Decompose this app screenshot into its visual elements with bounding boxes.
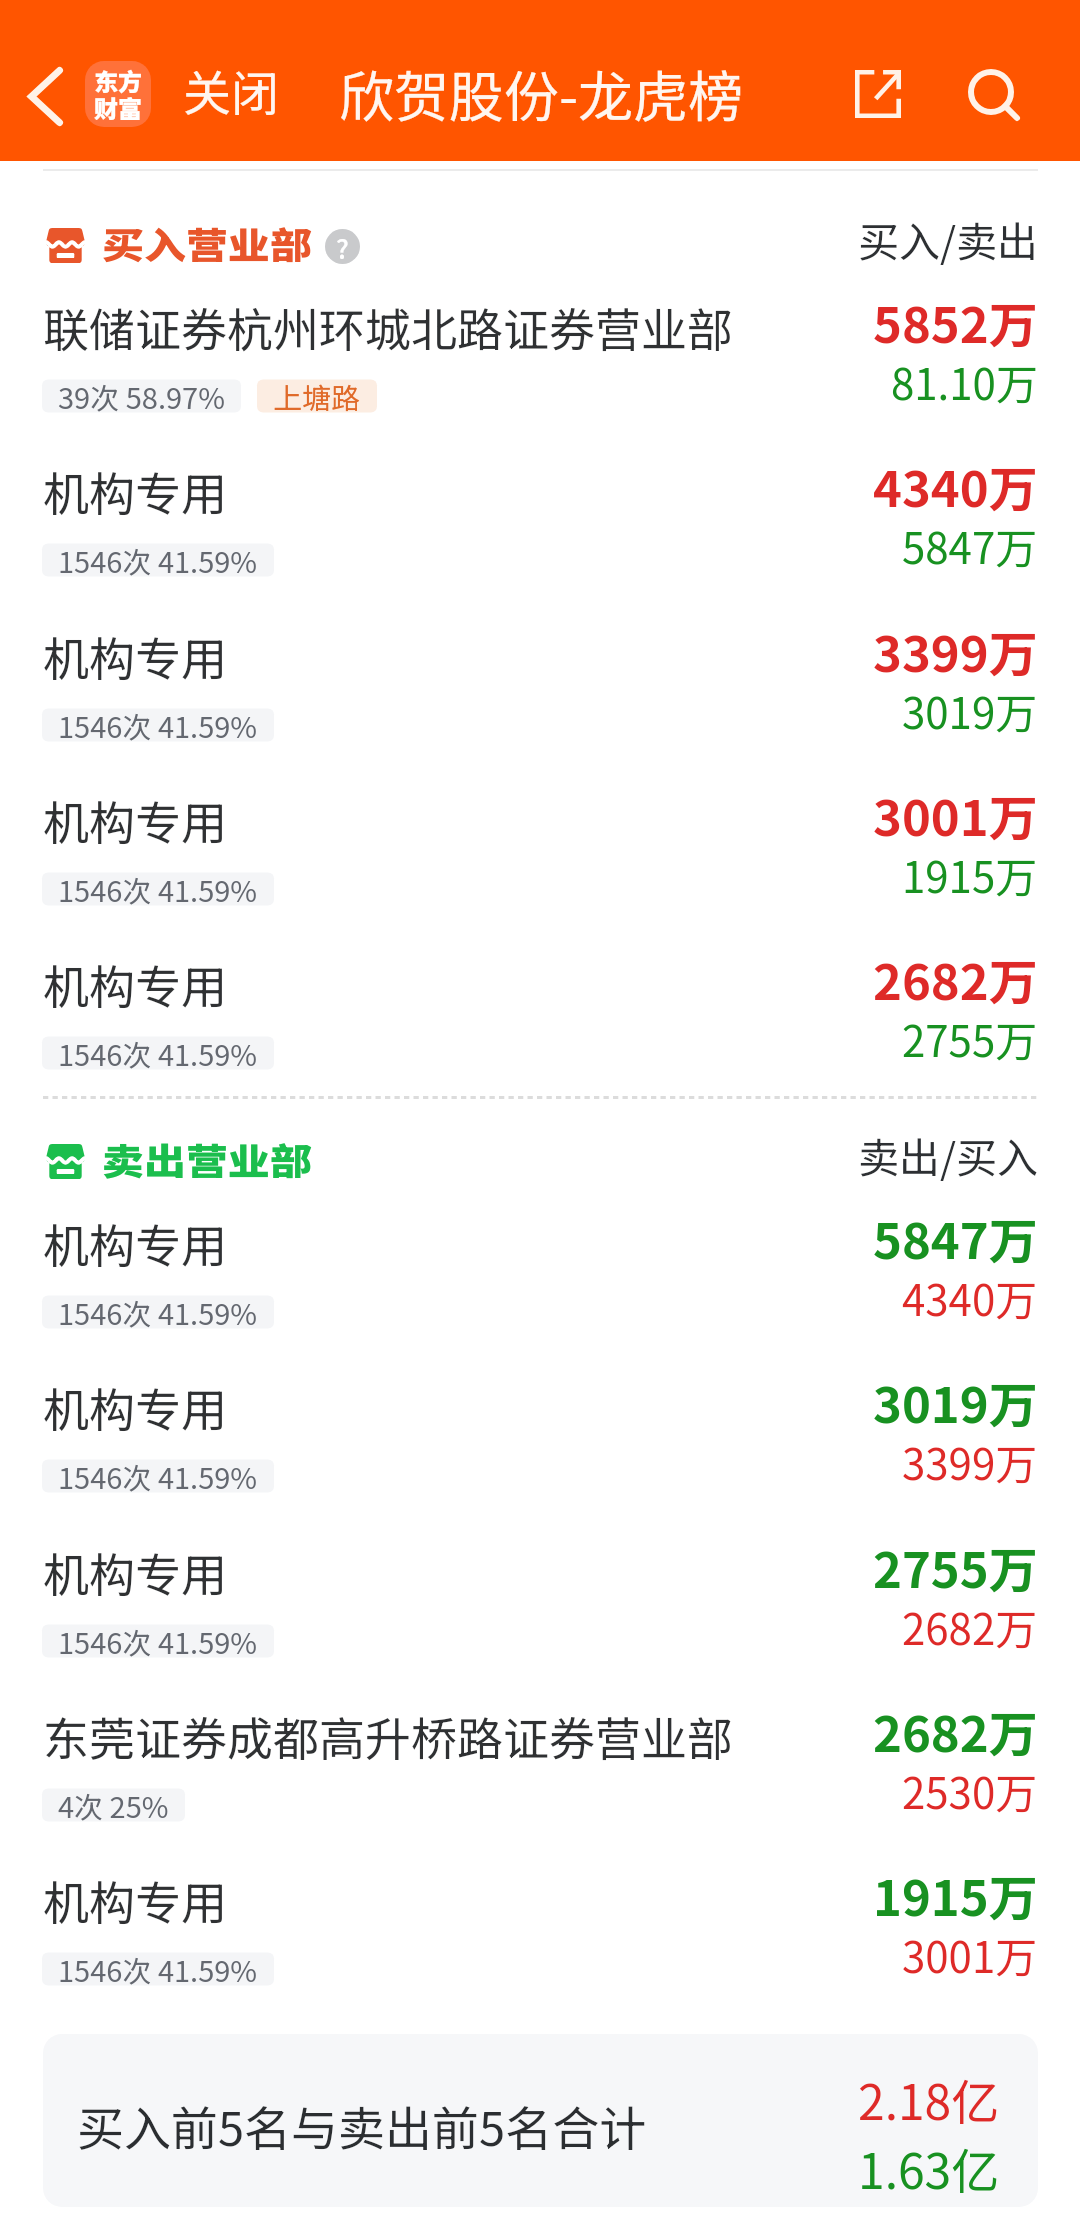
- staticText: 买入/卖出: [858, 209, 1039, 268]
- staticText: 机构专用: [43, 1210, 227, 1277]
- staticText: 机构专用: [43, 1539, 227, 1606]
- staticText: 欣贺股份-龙虎榜: [339, 53, 744, 133]
- staticText: 2682万: [873, 1695, 1038, 1766]
- button[interactable]: 机构专用: [0, 444, 1080, 608]
- staticText: 机构专用: [43, 1867, 227, 1934]
- staticText: 1.63亿: [858, 2133, 1000, 2203]
- staticText: 卖出/买入: [858, 1125, 1039, 1184]
- button[interactable]: 东莞证券成都高升桥路证券营业部: [0, 1689, 1080, 1853]
- staticText: 联储证券杭州环城北路证券营业部: [43, 294, 733, 361]
- staticText: 1546次 41.59%: [58, 539, 258, 581]
- staticText: 关闭: [183, 55, 280, 125]
- staticText: 1546次 41.59%: [58, 704, 258, 746]
- button[interactable]: 机构专用: [0, 773, 1080, 937]
- staticText: 2530万: [902, 1760, 1038, 1821]
- button[interactable]: 机构专用: [0, 1525, 1080, 1689]
- staticText: 机构专用: [43, 623, 227, 690]
- staticText: 2682万: [902, 1596, 1038, 1657]
- button[interactable]: Help: [325, 229, 360, 264]
- staticText: ?: [336, 229, 349, 264]
- staticText: 1546次 41.59%: [58, 1948, 258, 1990]
- button[interactable]: 买入前5名与卖出前5名合计: [43, 2034, 1038, 2207]
- button[interactable]: 机构专用: [0, 609, 1080, 773]
- staticText: 2755万: [873, 1531, 1038, 1602]
- staticText: 东方 财富: [94, 63, 142, 125]
- staticText: 1546次 41.59%: [58, 868, 258, 910]
- staticText: 4次 25%: [58, 1784, 169, 1826]
- button[interactable]: 机构专用: [0, 1853, 1080, 2017]
- staticText: 1546次 41.59%: [58, 1620, 258, 1662]
- staticText: 1915万: [902, 844, 1038, 905]
- staticText: 5847万: [902, 515, 1038, 576]
- staticText: 1546次 41.59%: [58, 1291, 258, 1333]
- staticText: 3399万: [873, 615, 1038, 686]
- button[interactable]: Share: [843, 58, 913, 130]
- staticText: 3019万: [902, 680, 1038, 741]
- staticText: 3001万: [873, 779, 1038, 850]
- staticText: 5847万: [873, 1202, 1038, 1273]
- staticText: 3399万: [902, 1431, 1038, 1492]
- staticText: 4340万: [873, 450, 1038, 521]
- button[interactable]: East Money logo: [85, 61, 151, 127]
- staticText: 5852万: [873, 286, 1038, 357]
- button[interactable]: 联储证券杭州环城北路证券营业部: [0, 280, 1080, 444]
- staticText: 4340万: [902, 1267, 1038, 1328]
- staticText: 81.10万: [891, 351, 1038, 412]
- staticText: 机构专用: [43, 787, 227, 854]
- staticText: 1915万: [873, 1859, 1038, 1930]
- staticText: 3019万: [873, 1366, 1038, 1437]
- staticText: 2755万: [902, 1008, 1038, 1069]
- button[interactable]: 关闭: [183, 55, 280, 125]
- staticText: 买入营业部: [102, 216, 313, 268]
- button[interactable]: 机构专用: [0, 1196, 1080, 1360]
- staticText: 东莞证券成都高升桥路证券营业部: [43, 1703, 733, 1770]
- staticText: 1546次 41.59%: [58, 1032, 258, 1074]
- staticText: 买入前5名与卖出前5名合计: [77, 2091, 647, 2159]
- staticText: 3001万: [902, 1924, 1038, 1985]
- staticText: 卖出营业部: [102, 1132, 313, 1184]
- staticText: 上塘路: [273, 375, 361, 417]
- staticText: 机构专用: [43, 1374, 227, 1441]
- button[interactable]: Back: [2, 63, 88, 129]
- staticText: 39次 58.97%: [58, 375, 225, 417]
- button[interactable]: 机构专用: [0, 1360, 1080, 1524]
- staticText: 机构专用: [43, 951, 227, 1018]
- staticText: 2.18亿: [858, 2064, 1000, 2134]
- staticText: 机构专用: [43, 458, 227, 525]
- button[interactable]: Search: [969, 70, 1025, 126]
- staticText: 2682万: [873, 943, 1038, 1014]
- button[interactable]: 机构专用: [0, 937, 1080, 1101]
- staticText: 1546次 41.59%: [58, 1455, 258, 1497]
